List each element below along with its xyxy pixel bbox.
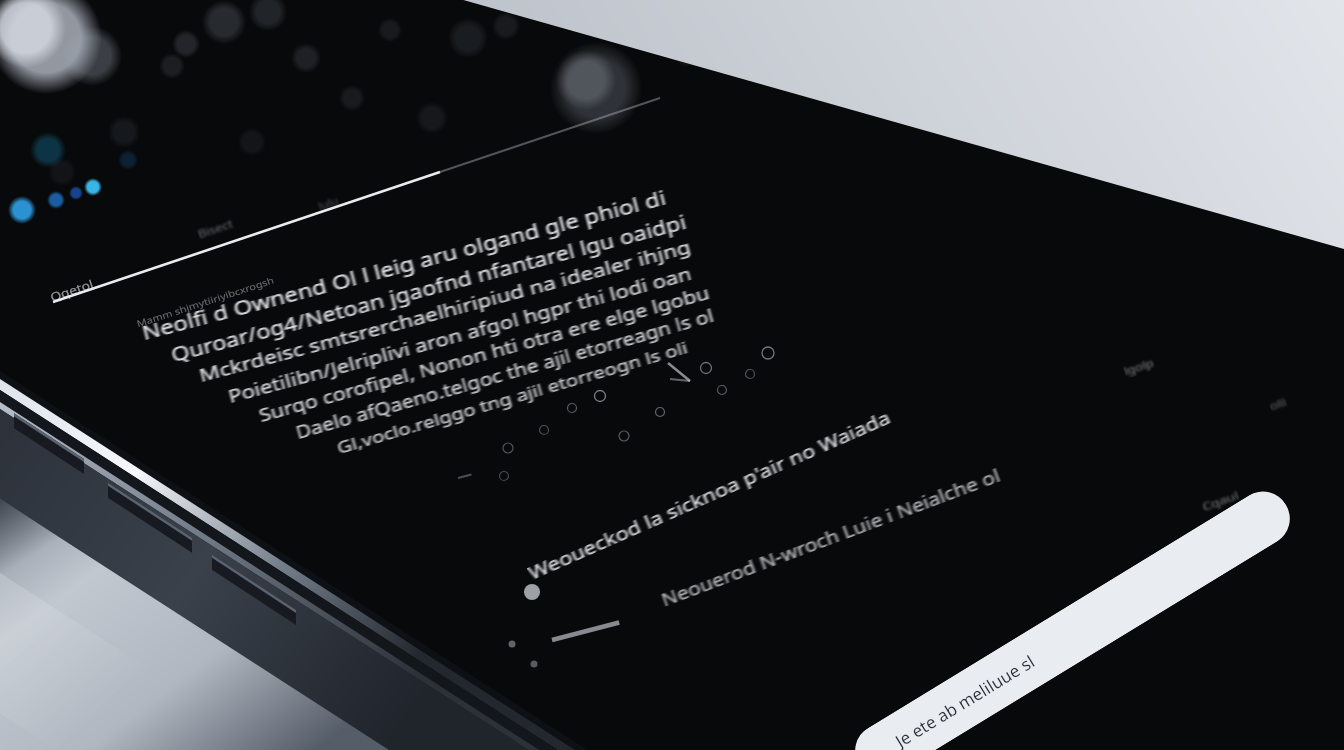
staticText: Poietilibn/Jelriplivi aron afgol hgpr th… bbox=[225, 260, 694, 408]
staticText: Neouerod N-wroch Luie i Neialche ol bbox=[658, 464, 1003, 612]
staticText: Quroar/og4/Netoan jgaofnd nfantarel lgu … bbox=[168, 208, 689, 367]
staticText: Neolfi d Ownend Ol l leig aru olgand gle… bbox=[139, 184, 669, 346]
staticText: Cqaul bbox=[1200, 487, 1241, 515]
staticText: Gl,voclo.relggo tng ajil etorreogn ls ol… bbox=[334, 335, 691, 459]
staticText: Daelo afQaeno.telgoc the ajil etorreagn … bbox=[293, 304, 717, 445]
staticText: Surqo corofipel, Nonon hti otra ere elge… bbox=[256, 280, 712, 427]
staticText: Qqetol bbox=[48, 276, 96, 305]
staticText: lgolp bbox=[1122, 355, 1156, 379]
staticText: Mamm shjmytiiriyibcxrogsh bbox=[135, 273, 276, 330]
staticText: Je ete ab meliluue sl bbox=[891, 650, 1039, 750]
staticText: Mckrdeisc smtsrerchaelhiripiud na ideale… bbox=[196, 233, 694, 387]
staticText: lulu bbox=[316, 193, 341, 212]
staticText: Bisect bbox=[196, 216, 236, 242]
staticText: olli bbox=[1268, 395, 1288, 412]
button[interactable]: Je ete ab meliluue sl bbox=[845, 481, 1300, 750]
staticText: Weoueckod la sicknoa p'air no Waiada bbox=[524, 404, 894, 584]
